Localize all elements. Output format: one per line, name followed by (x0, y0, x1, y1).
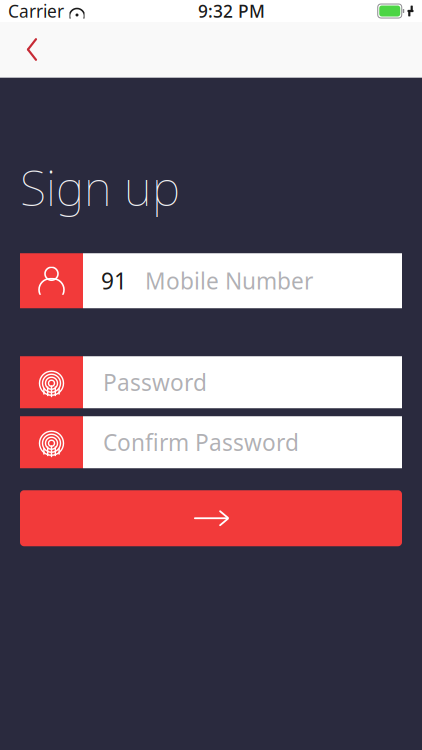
button[interactable]: Back (10, 27, 54, 71)
staticText: Password (103, 367, 207, 397)
staticText: Mobile Number (145, 266, 313, 296)
button[interactable]: Confirm Password (20, 416, 402, 468)
staticText: Sign up (20, 155, 180, 219)
button[interactable]: Mobile Number (20, 253, 402, 308)
staticText: 9:32 PM (198, 0, 265, 22)
staticText: 91 (101, 266, 127, 296)
staticText: Confirm Password (103, 427, 299, 457)
button[interactable]: Password (20, 356, 402, 408)
staticText: Carrier (8, 0, 64, 22)
button[interactable]: Continue (20, 490, 402, 546)
